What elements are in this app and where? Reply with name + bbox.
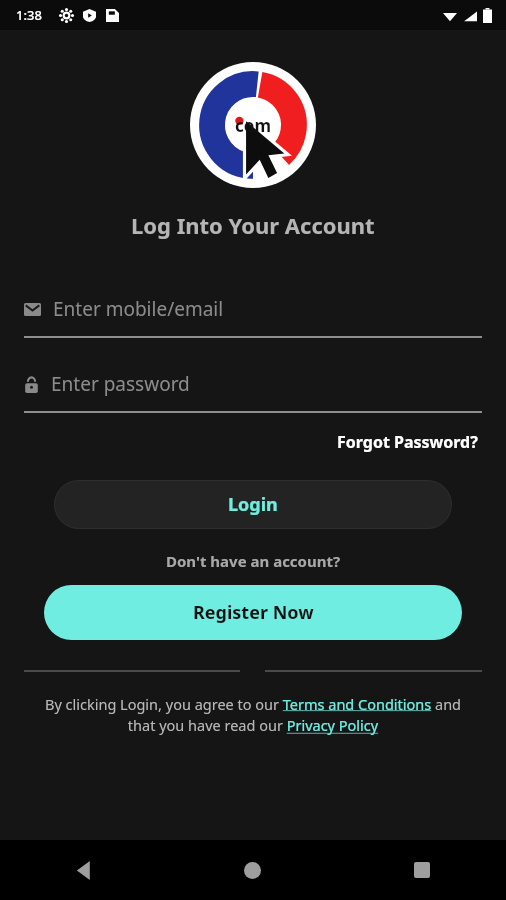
button[interactable]: Forgot Password? <box>333 427 482 457</box>
staticText: Enter mobile/email <box>53 296 224 322</box>
button[interactable]: Home <box>168 840 337 900</box>
staticText: 1:38 <box>16 6 42 24</box>
staticText: Register Now <box>193 600 314 625</box>
button[interactable]: By clicking Login, you agree to our Term… <box>38 694 468 736</box>
staticText: By clicking Login, you agree to our Term… <box>38 694 468 736</box>
button[interactable]: Enter mobile/email <box>24 296 482 338</box>
button[interactable]: Login <box>54 480 452 529</box>
staticText: Forgot Password? <box>337 431 478 453</box>
staticText: com <box>235 114 271 137</box>
staticText: Enter password <box>51 371 190 397</box>
staticText: Login <box>228 492 278 517</box>
button[interactable]: Back <box>0 840 168 900</box>
button[interactable]: Enter password <box>24 371 482 413</box>
staticText: Log Into Your Account <box>131 210 375 240</box>
button[interactable]: Register Now <box>44 585 462 640</box>
staticText: Don't have an account? <box>166 551 341 571</box>
button[interactable]: Recent apps <box>337 840 506 900</box>
